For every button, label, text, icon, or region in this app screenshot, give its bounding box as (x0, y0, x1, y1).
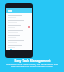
button[interactable] (6, 39, 32, 44)
staticText: Organize your daily tasks, set reminders… (4, 62, 60, 68)
button[interactable] (6, 34, 32, 39)
button[interactable] (6, 44, 32, 49)
button[interactable] (6, 8, 32, 13)
button[interactable] (6, 24, 32, 29)
button[interactable] (6, 19, 32, 24)
staticText: Easy Task Management (14, 59, 51, 63)
button[interactable] (6, 29, 32, 34)
button[interactable] (6, 14, 32, 19)
